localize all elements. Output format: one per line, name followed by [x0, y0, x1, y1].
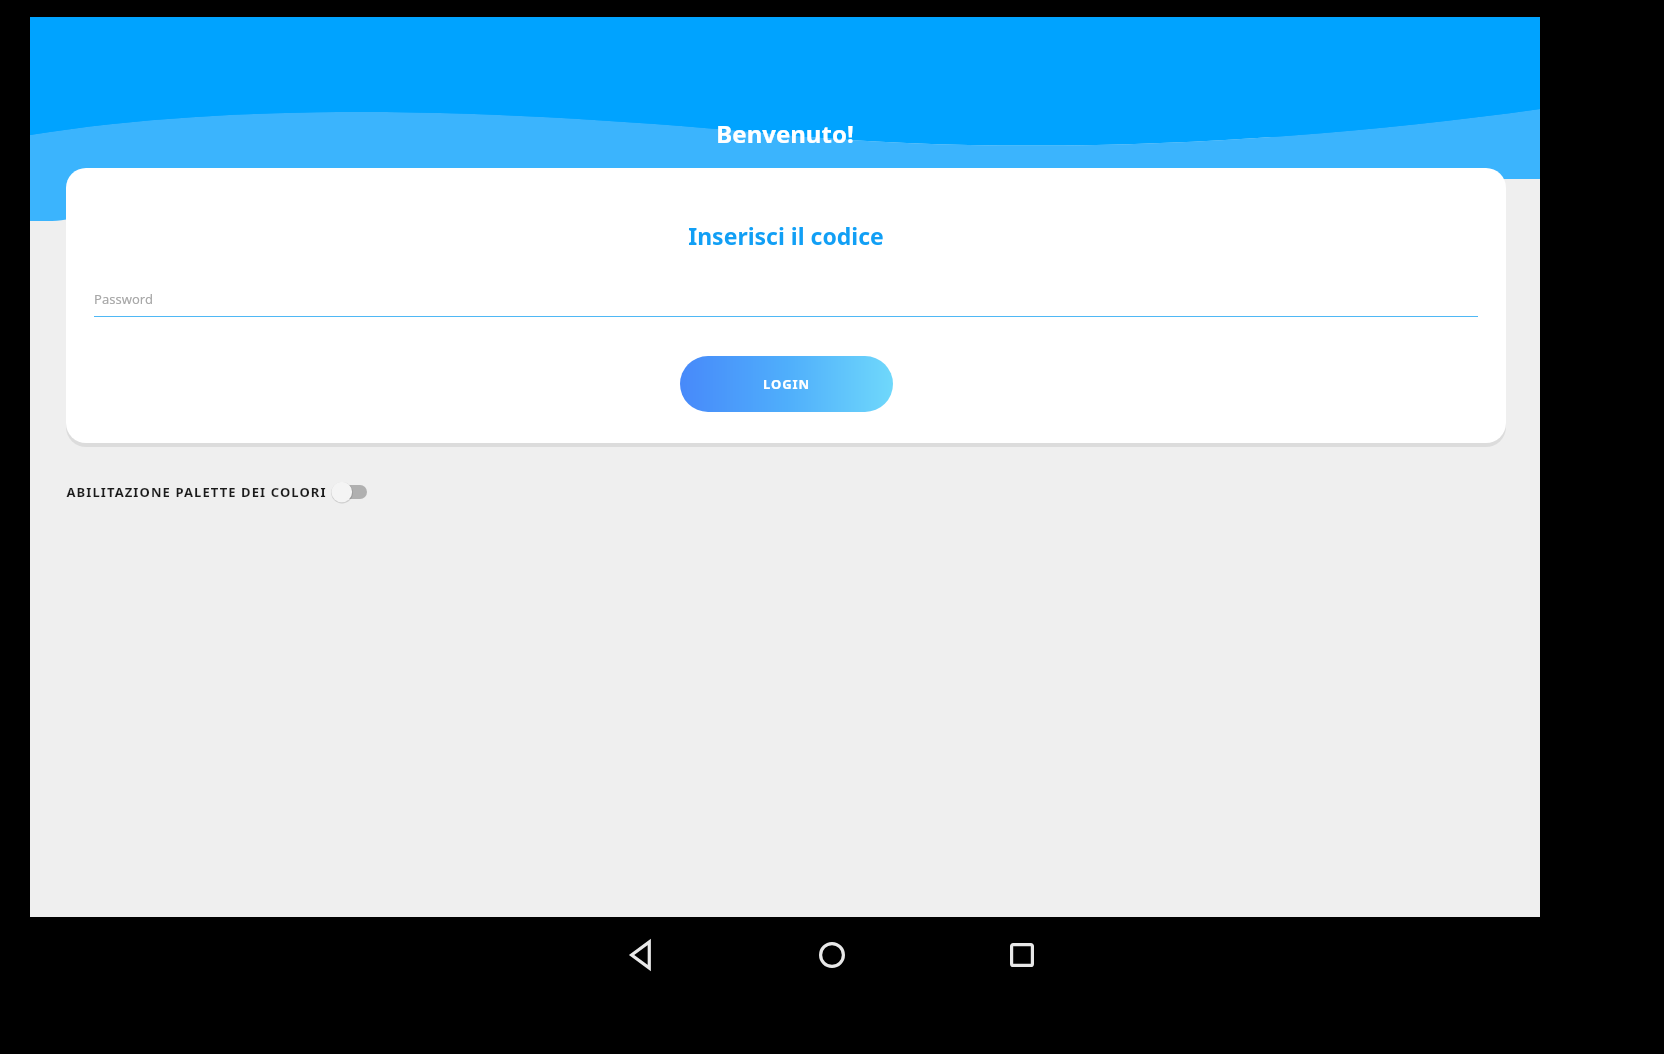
- staticText: Benvenuto!: [716, 117, 854, 150]
- staticText: Password: [94, 290, 153, 308]
- button[interactable]: Password: [94, 290, 1478, 317]
- staticText: LOGIN: [763, 375, 810, 393]
- other: Abilitazione palette dei colori: [331, 480, 367, 504]
- staticText: ABILITAZIONE PALETTE DEI COLORI: [66, 483, 327, 501]
- button[interactable]: ABILITAZIONE PALETTE DEI COLORI: [66, 472, 367, 512]
- button[interactable]: Recent apps: [974, 917, 1070, 992]
- button[interactable]: LOGIN: [680, 356, 893, 412]
- button[interactable]: Home: [784, 917, 880, 992]
- button[interactable]: Back: [594, 917, 690, 992]
- staticText: Inserisci il codice: [688, 220, 884, 251]
